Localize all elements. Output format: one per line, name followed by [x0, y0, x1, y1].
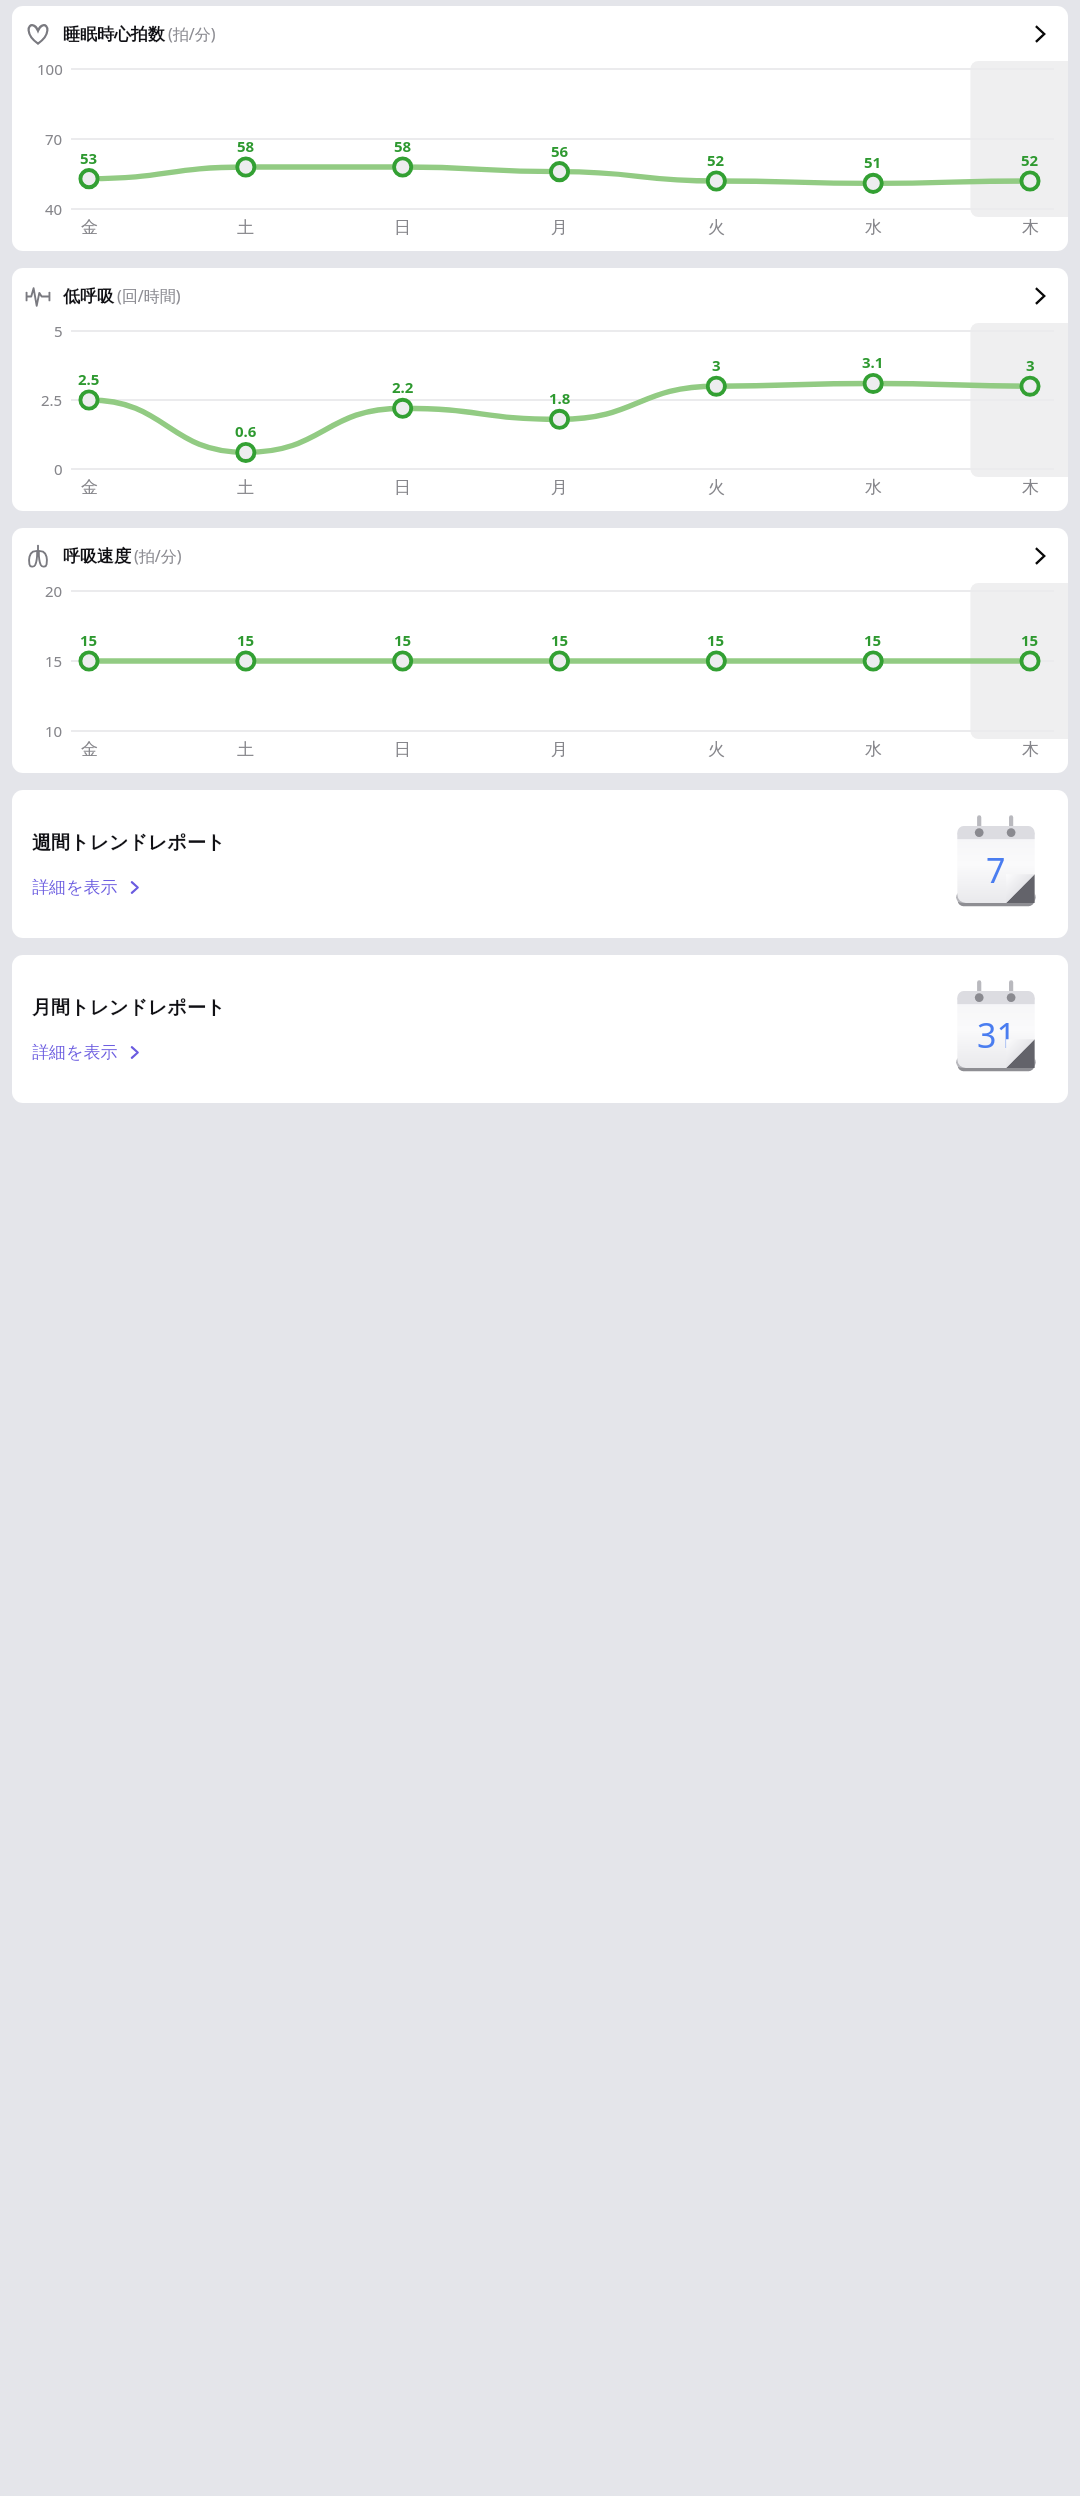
staticText: 月	[551, 477, 568, 498]
button[interactable]: 詳細を表示	[32, 1042, 142, 1063]
staticText: 15	[551, 630, 569, 650]
staticText: 20	[45, 581, 63, 601]
staticText: 15	[45, 651, 63, 671]
staticText: 詳細を表示	[32, 1042, 118, 1063]
staticText: 日	[394, 477, 411, 498]
staticText: 15	[707, 630, 725, 650]
staticText: 金	[81, 477, 98, 498]
staticText: 火	[708, 217, 725, 238]
staticText: 15	[394, 630, 412, 650]
staticText: 58	[237, 136, 255, 156]
staticText: 水	[865, 739, 882, 760]
staticText: 水	[865, 217, 882, 238]
staticText: 火	[708, 477, 725, 498]
staticText: 100	[37, 59, 63, 79]
staticText: 15	[80, 630, 98, 650]
staticText: 1.8	[549, 388, 571, 408]
staticText: 木	[1022, 217, 1039, 238]
staticText: 月間トレンドレポート	[32, 996, 226, 1020]
staticText: 土	[237, 217, 254, 238]
button[interactable]: 月間トレンドレポート	[12, 955, 1068, 1103]
staticText: 53	[80, 148, 98, 168]
staticText: 3	[712, 355, 721, 375]
staticText: 火	[708, 739, 725, 760]
staticText: 51	[864, 152, 882, 172]
button[interactable]: 詳細を表示	[1024, 280, 1056, 312]
staticText: 3	[1026, 355, 1035, 375]
staticText: 金	[81, 739, 98, 760]
staticText: (回/時間)	[117, 285, 181, 307]
button[interactable]: 詳細を表示	[1024, 18, 1056, 50]
staticText: 月	[551, 217, 568, 238]
staticText: 70	[45, 129, 63, 149]
staticText: 2.2	[392, 377, 414, 397]
staticText: (拍/分)	[168, 23, 216, 45]
staticText: 10	[45, 721, 63, 741]
staticText: 56	[551, 141, 569, 161]
staticText: 土	[237, 739, 254, 760]
staticText: 3.1	[862, 352, 884, 372]
staticText: 58	[394, 136, 412, 156]
button[interactable]: 呼吸速度	[12, 528, 1068, 773]
staticText: 5	[54, 321, 63, 341]
button[interactable]: 低呼吸	[12, 268, 1068, 511]
staticText: 睡眠時心拍数	[63, 24, 165, 45]
staticText: 2.5	[41, 390, 63, 410]
staticText: (拍/分)	[134, 545, 182, 567]
staticText: 40	[45, 199, 63, 219]
staticText: 呼吸速度	[63, 546, 131, 567]
staticText: 0	[54, 459, 63, 479]
staticText: 水	[865, 477, 882, 498]
staticText: 52	[1021, 150, 1039, 170]
staticText: 日	[394, 217, 411, 238]
staticText: 15	[237, 630, 255, 650]
staticText: 金	[81, 217, 98, 238]
staticText: 月	[551, 739, 568, 760]
staticText: 木	[1022, 739, 1039, 760]
staticText: 52	[707, 150, 725, 170]
staticText: 0.6	[235, 421, 257, 441]
staticText: 31	[977, 1012, 1016, 1058]
staticText: 7	[986, 847, 1006, 893]
staticText: 2.5	[78, 369, 100, 389]
staticText: 低呼吸	[63, 286, 114, 307]
staticText: 15	[1021, 630, 1039, 650]
staticText: 土	[237, 477, 254, 498]
button[interactable]: 詳細を表示	[1024, 540, 1056, 572]
staticText: 15	[864, 630, 882, 650]
staticText: 週間トレンドレポート	[32, 831, 226, 855]
button[interactable]: 睡眠時心拍数	[12, 6, 1068, 251]
staticText: 日	[394, 739, 411, 760]
staticText: 木	[1022, 477, 1039, 498]
staticText: 詳細を表示	[32, 877, 118, 898]
button[interactable]: 週間トレンドレポート	[12, 790, 1068, 938]
button[interactable]: 詳細を表示	[32, 877, 142, 898]
